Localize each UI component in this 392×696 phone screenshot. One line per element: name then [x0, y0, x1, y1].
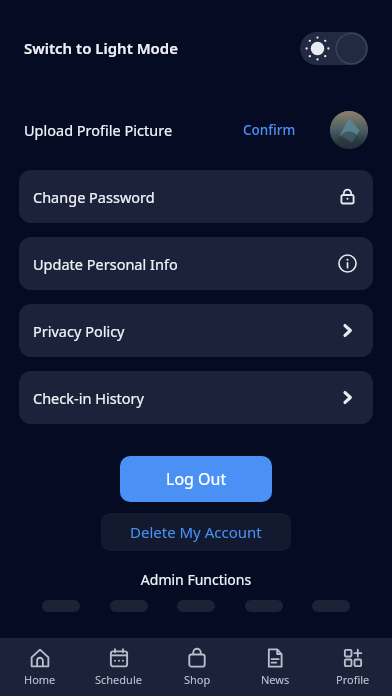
staticText: Switch to Light Mode [24, 38, 179, 58]
button[interactable]: Switch to light mode [300, 32, 368, 65]
button[interactable]: Shop [158, 638, 236, 696]
staticText: Confirm [243, 121, 296, 139]
button[interactable]: Admin function [42, 600, 80, 612]
staticText: Delete My Account [130, 522, 262, 542]
staticText: Home [24, 672, 56, 687]
other: Change password [338, 187, 357, 206]
button[interactable]: Switch to Light Mode [0, 0, 392, 96]
button[interactable]: Check-in History [19, 371, 373, 424]
staticText: Change Password [33, 187, 155, 207]
other: Open [338, 388, 357, 407]
staticText: Shop [184, 672, 211, 687]
staticText: News [261, 672, 290, 687]
staticText: Admin Functions [0, 570, 392, 589]
button[interactable]: Profile [314, 638, 392, 696]
staticText: Check-in History [33, 388, 144, 408]
button[interactable]: Admin function [312, 600, 350, 612]
button[interactable]: Schedule [79, 638, 158, 696]
staticText: Update Personal Info [33, 254, 178, 274]
staticText: Log Out [166, 468, 227, 490]
other: Open [338, 321, 357, 340]
button[interactable]: Admin function [245, 600, 283, 612]
staticText: Privacy Policy [33, 321, 125, 341]
button[interactable]: Confirm [233, 115, 306, 145]
button[interactable]: Admin function [177, 600, 215, 612]
button[interactable]: Privacy Policy [19, 304, 373, 357]
staticText: Schedule [95, 672, 142, 687]
button[interactable]: Admin function [110, 600, 148, 612]
button[interactable]: Change Password [19, 170, 373, 223]
staticText: Upload Profile Picture [24, 120, 173, 140]
button[interactable]: Update Personal Info [19, 237, 373, 290]
button[interactable]: Log Out [120, 456, 272, 502]
button[interactable]: Profile picture [330, 111, 368, 149]
staticText: Profile [336, 672, 370, 687]
button[interactable]: Delete My Account [101, 513, 291, 551]
button[interactable]: Home [0, 638, 79, 696]
button[interactable]: News [236, 638, 314, 696]
other: Update personal info [338, 254, 357, 273]
